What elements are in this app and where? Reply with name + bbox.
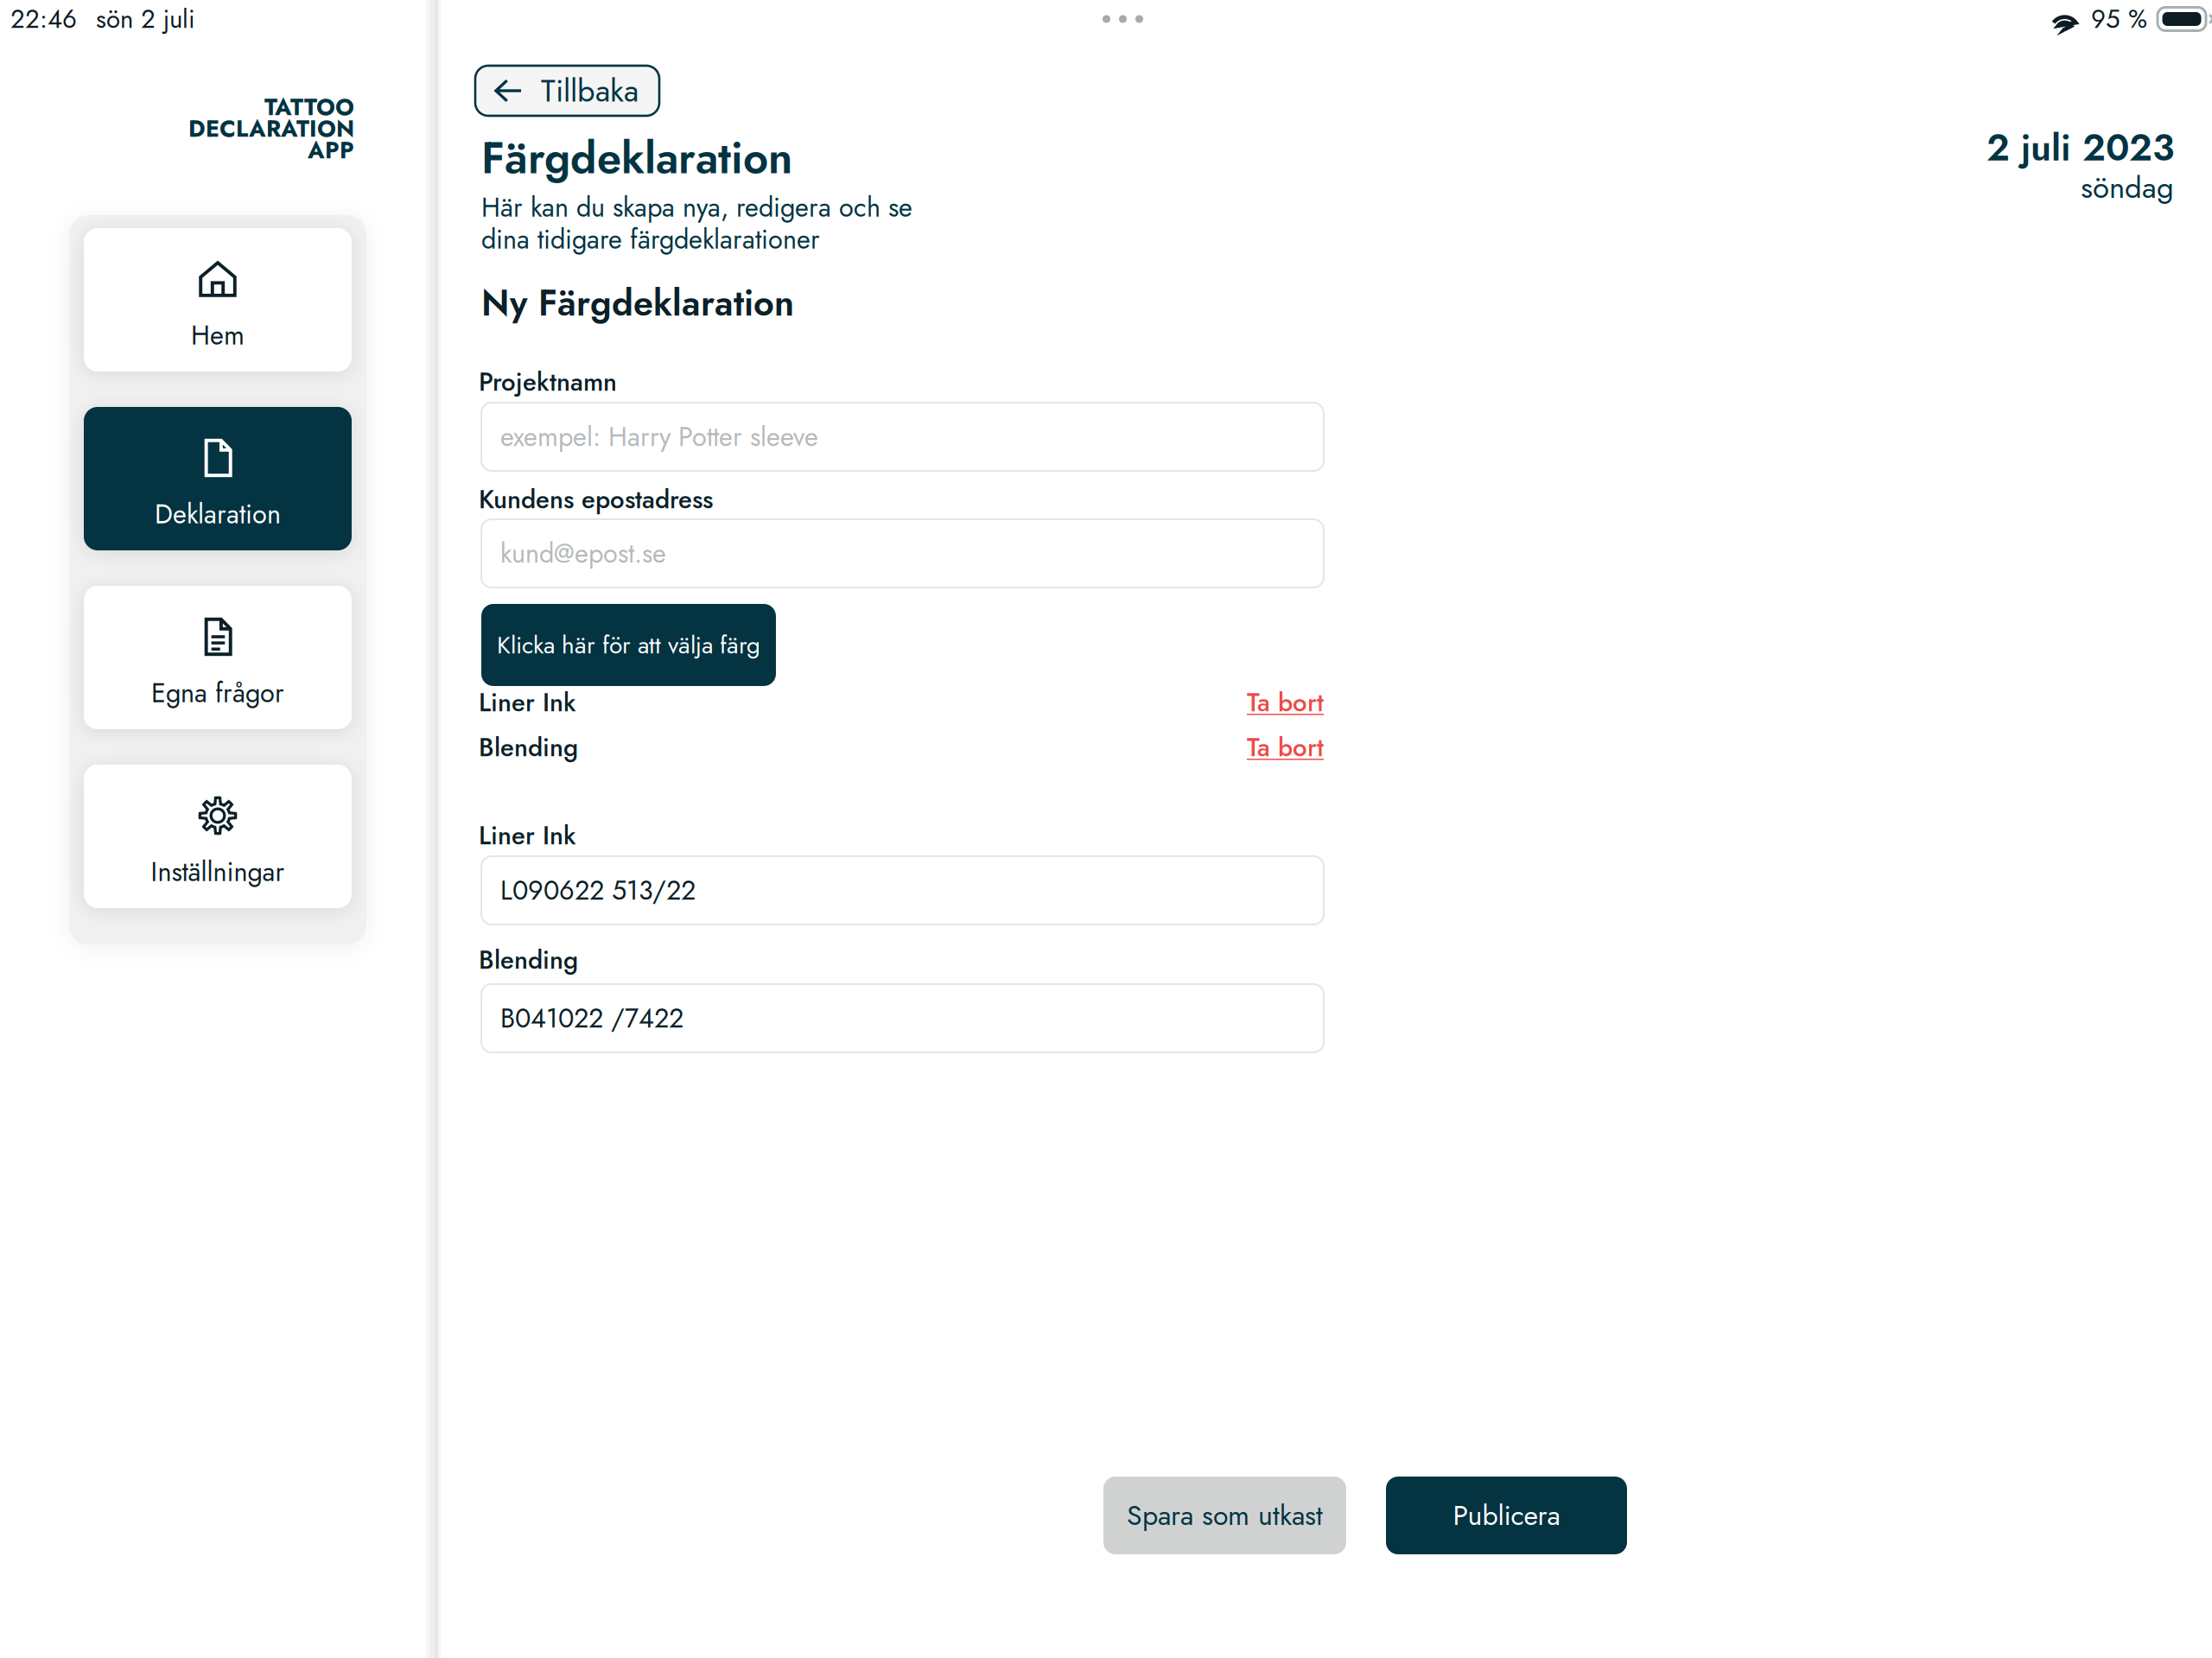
staticText: Färgdeklaration <box>481 126 792 190</box>
staticText: DECLARATION <box>188 112 354 145</box>
button[interactable]: L090622 513/22 <box>481 856 1324 924</box>
staticText: kund@epost.se <box>500 534 666 572</box>
staticText: exempel: Harry Potter sleeve <box>500 418 818 456</box>
staticText: Här kan du skapa nya, redigera och se <box>481 188 912 226</box>
button[interactable]: Publicera <box>1386 1477 1627 1554</box>
button[interactable]: Deklaration <box>84 407 352 550</box>
staticText: APP <box>308 134 354 167</box>
button[interactable]: Ta bort <box>1247 688 1324 717</box>
staticText: Liner Ink <box>479 817 576 854</box>
staticText: sön 2 juli <box>96 1 195 37</box>
button[interactable]: Ta bort <box>1247 733 1324 762</box>
staticText: 95 % <box>2091 1 2147 37</box>
button[interactable]: Spara som utkast <box>1103 1477 1346 1554</box>
staticText: Klicka här för att välja färg <box>497 628 760 663</box>
button[interactable]: Egna frågor <box>84 586 352 729</box>
button[interactable]: Tillbaka <box>475 66 659 116</box>
staticText: Liner Ink <box>479 684 576 721</box>
button[interactable]: Klicka här för att välja färg <box>481 604 776 686</box>
staticText: dina tidigare färgdeklarationer <box>481 220 820 258</box>
staticText: Inställningar <box>151 853 285 891</box>
button[interactable]: kund@epost.se <box>481 519 1324 588</box>
button[interactable]: B041022 /7422 <box>481 984 1324 1052</box>
staticText: Tillbaka <box>541 68 639 113</box>
button[interactable]: exempel: Harry Potter sleeve <box>481 403 1324 471</box>
staticText: Publicera <box>1453 1495 1560 1535</box>
staticText: Ta bort <box>1247 729 1324 766</box>
staticText: söndag <box>2081 166 2174 209</box>
staticText: Projektnamn <box>479 364 617 400</box>
staticText: B041022 /7422 <box>500 999 683 1037</box>
staticText: L090622 513/22 <box>500 871 696 909</box>
staticText: Egna frågor <box>151 674 284 712</box>
staticText: Spara som utkast <box>1127 1495 1323 1535</box>
staticText: TATTOO <box>264 90 354 124</box>
staticText: Deklaration <box>155 495 281 533</box>
button[interactable]: Inställningar <box>84 765 352 908</box>
button[interactable]: Hem <box>84 228 352 372</box>
staticText: Hem <box>191 316 245 354</box>
staticText: 22:46 <box>10 1 77 37</box>
staticText: Kundens epostadress <box>479 481 713 518</box>
staticText: Blending <box>479 942 578 978</box>
staticText: Blending <box>479 729 578 766</box>
staticText: 2 juli 2023 <box>1986 121 2174 174</box>
staticText: Ny Färgdeklaration <box>481 277 794 329</box>
staticText: Ta bort <box>1247 684 1324 721</box>
